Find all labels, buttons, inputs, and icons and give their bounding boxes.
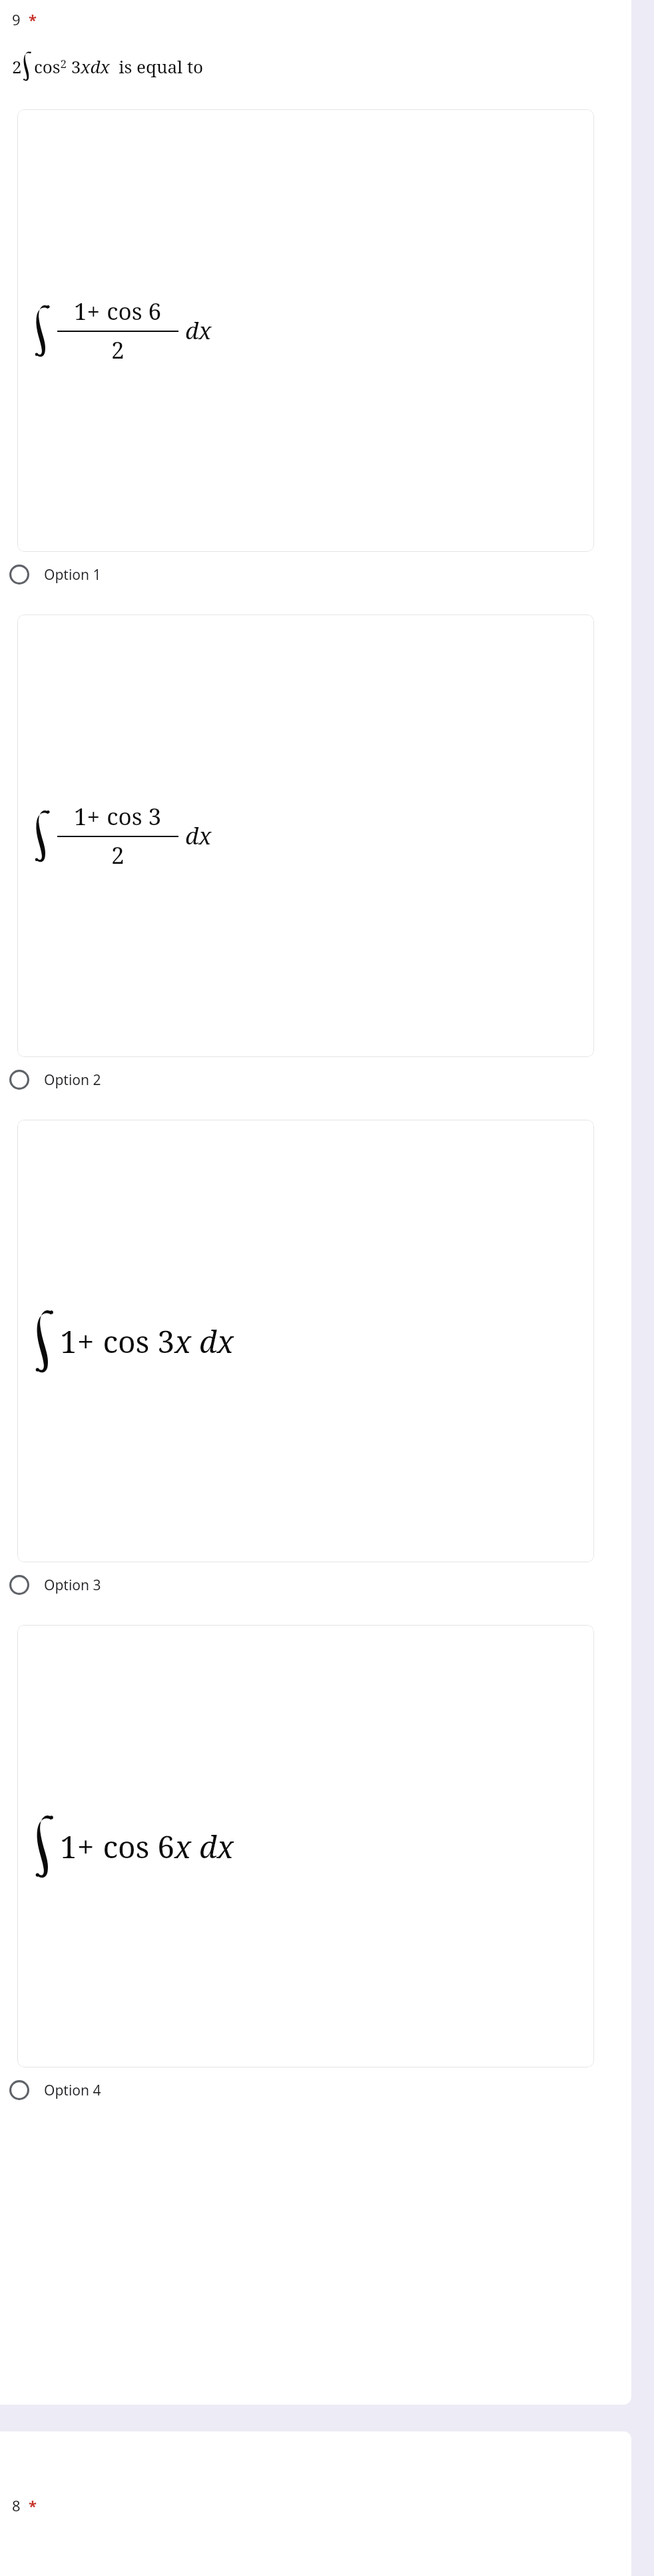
staticText: Option 2 <box>44 1070 101 1090</box>
staticText: * <box>29 9 37 29</box>
staticText: 1+ cos 3 <box>74 800 162 832</box>
staticText: 2 <box>111 334 125 366</box>
staticText: dx <box>185 820 212 852</box>
button[interactable]: Option 1 <box>0 552 631 597</box>
staticText: cos2 3xdx is equal to <box>34 55 204 78</box>
button[interactable]: 1+ cos 3x dx <box>17 1120 594 1562</box>
staticText: Option 3 <box>44 1576 101 1595</box>
staticText: 1+ cos 3x dx <box>60 1320 234 1362</box>
staticText: 2 <box>12 55 22 78</box>
staticText: 9 <box>12 9 21 29</box>
staticText: dx <box>185 315 212 347</box>
button[interactable]: Option 3 <box>0 1562 631 1608</box>
button[interactable]: 1+ cos 6 <box>17 109 594 552</box>
staticText: Option 4 <box>44 2081 101 2100</box>
staticText: 1+ cos 6 <box>74 295 162 327</box>
staticText: 8 <box>12 2495 21 2515</box>
staticText: 1+ cos 6x dx <box>60 1826 234 1868</box>
button[interactable]: Option 4 <box>0 2067 631 2113</box>
button[interactable]: 1+ cos 3 <box>17 615 594 1057</box>
staticText: 2 <box>111 839 125 871</box>
staticText: Option 1 <box>44 565 101 585</box>
button[interactable]: Option 2 <box>0 1057 631 1102</box>
staticText: * <box>29 2495 37 2515</box>
button[interactable]: 1+ cos 6x dx <box>17 1625 594 2067</box>
